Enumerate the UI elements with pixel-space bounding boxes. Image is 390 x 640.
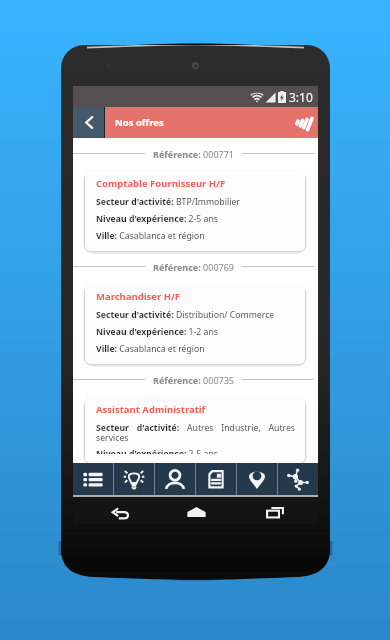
- button[interactable]: Profile: [155, 463, 195, 495]
- staticText: Comptable Fournisseur H/F: [96, 177, 226, 190]
- staticText: Marchandiser H/F: [96, 290, 181, 303]
- button[interactable]: List: [73, 463, 113, 495]
- staticText: Secteur d'activité: Distribution/ Commer…: [96, 309, 295, 321]
- button[interactable]: Recents: [263, 500, 287, 524]
- staticText: Niveau d'expérience: 2-5 ans: [96, 448, 295, 454]
- staticText: Nos offres: [115, 116, 164, 129]
- button[interactable]: Comptable Fournisseur H/F: [85, 169, 305, 251]
- button[interactable]: Marchandiser H/F: [85, 282, 305, 364]
- button[interactable]: Ideas: [114, 463, 154, 495]
- button[interactable]: Documents: [196, 463, 236, 495]
- staticText: Ville: Casablanca et région: [96, 343, 295, 355]
- staticText: Assistant Administratif: [96, 403, 206, 416]
- staticText: Référence: 000735: [153, 374, 234, 386]
- staticText: Référence: 000769: [153, 261, 234, 273]
- staticText: Secteur d'activité: Autres Industrie, Au…: [96, 422, 295, 443]
- staticText: Référence: 000771: [153, 148, 234, 160]
- button[interactable]: Assistant Administratif: [85, 395, 305, 463]
- button[interactable]: Back: [108, 501, 132, 525]
- staticText: Secteur d'activité: BTP/Immobilier: [96, 196, 295, 208]
- staticText: Ville: Casablanca et région: [96, 230, 295, 242]
- button[interactable]: Back: [73, 107, 104, 138]
- button[interactable]: Network: [278, 463, 318, 495]
- button[interactable]: Places: [237, 463, 277, 495]
- staticText: Niveau d'expérience: 1-2 ans: [96, 326, 295, 338]
- staticText: 3:10: [289, 89, 313, 105]
- button[interactable]: Home: [184, 500, 208, 524]
- staticText: Niveau d'expérience: 2-5 ans: [96, 213, 295, 225]
